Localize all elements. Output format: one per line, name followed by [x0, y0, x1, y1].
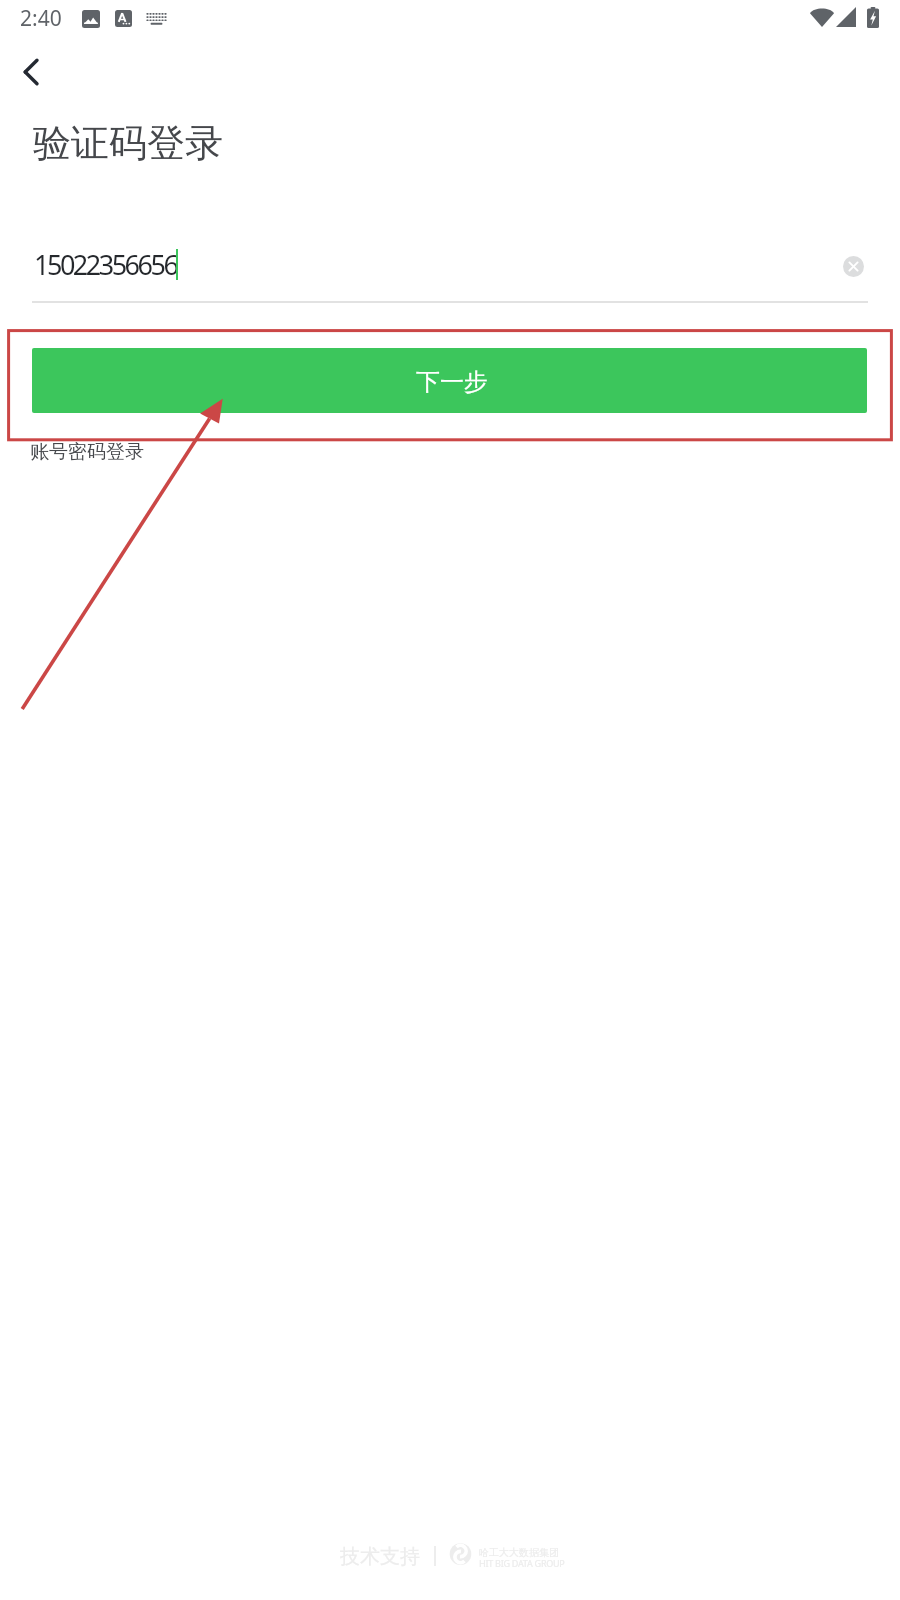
- button[interactable]: Clear phone number: [835, 248, 872, 285]
- staticText: 哈工大大数据集团: [479, 1546, 559, 1559]
- staticText: 技术支持: [340, 1544, 420, 1569]
- staticText: 15022356656: [34, 246, 177, 283]
- button[interactable]: Back: [8, 49, 54, 95]
- staticText: 2:40: [20, 4, 62, 33]
- staticText: 下一步: [416, 367, 488, 397]
- button[interactable]: 账号密码登录: [30, 439, 144, 465]
- staticText: HIT BIG DATA GROUP: [479, 1557, 565, 1569]
- staticText: 账号密码登录: [30, 440, 144, 464]
- button[interactable]: Phone number input: [32, 234, 822, 301]
- staticText: 验证码登录: [33, 119, 223, 167]
- button[interactable]: 下一步: [32, 348, 867, 413]
